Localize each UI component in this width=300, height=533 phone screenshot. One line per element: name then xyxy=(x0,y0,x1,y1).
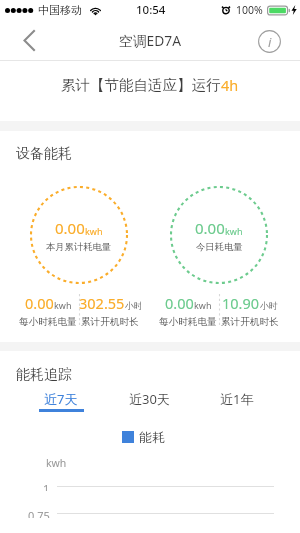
staticText: 近30天 xyxy=(129,390,170,408)
staticText: kwh xyxy=(46,456,67,470)
button[interactable]: 近30天 xyxy=(105,390,193,411)
staticText: 能耗 xyxy=(139,429,165,445)
staticText: 0.75 xyxy=(28,508,50,518)
staticText: 每小时耗电量 xyxy=(19,316,77,328)
staticText: 能耗追踪 xyxy=(16,366,72,384)
button[interactable]: Info xyxy=(253,25,285,57)
staticText: 0.00 xyxy=(165,293,194,313)
staticText: kwh xyxy=(194,299,212,311)
staticText: 10.90 xyxy=(222,293,260,313)
staticText: 4h xyxy=(221,75,239,95)
staticText: 0.00 xyxy=(195,218,225,238)
staticText: 小时 xyxy=(125,300,141,311)
staticText: 近7天 xyxy=(44,390,78,408)
button[interactable]: 近1年 xyxy=(193,390,281,411)
staticText: 设备能耗 xyxy=(16,145,72,163)
staticText: 今日耗电量 xyxy=(196,241,243,253)
staticText: 累计开机时长 xyxy=(81,316,139,328)
staticText: 100% xyxy=(236,3,263,17)
staticText: 本月累计耗电量 xyxy=(46,241,112,253)
staticText: 累计【节能自适应】运行 xyxy=(61,76,221,94)
staticText: 每小时耗电量 xyxy=(159,316,217,328)
staticText: 302.55 xyxy=(79,293,125,313)
staticText: 1 xyxy=(43,481,50,491)
staticText: 小时 xyxy=(260,300,278,311)
button[interactable]: 近7天 xyxy=(17,390,105,411)
staticText: 10:54 xyxy=(136,2,166,18)
staticText: kwh xyxy=(85,225,103,237)
button[interactable]: Back xyxy=(0,20,44,61)
staticText: i xyxy=(268,33,272,51)
staticText: 近1年 xyxy=(220,390,254,408)
staticText: 0.00 xyxy=(55,218,85,238)
staticText: kwh xyxy=(225,225,243,237)
staticText: 累计开机时长 xyxy=(221,316,279,328)
staticText: 空调ED7A xyxy=(119,31,182,50)
staticText: kwh xyxy=(54,299,72,311)
staticText: 中国移动 xyxy=(38,3,82,17)
staticText: 0.00 xyxy=(25,293,54,313)
